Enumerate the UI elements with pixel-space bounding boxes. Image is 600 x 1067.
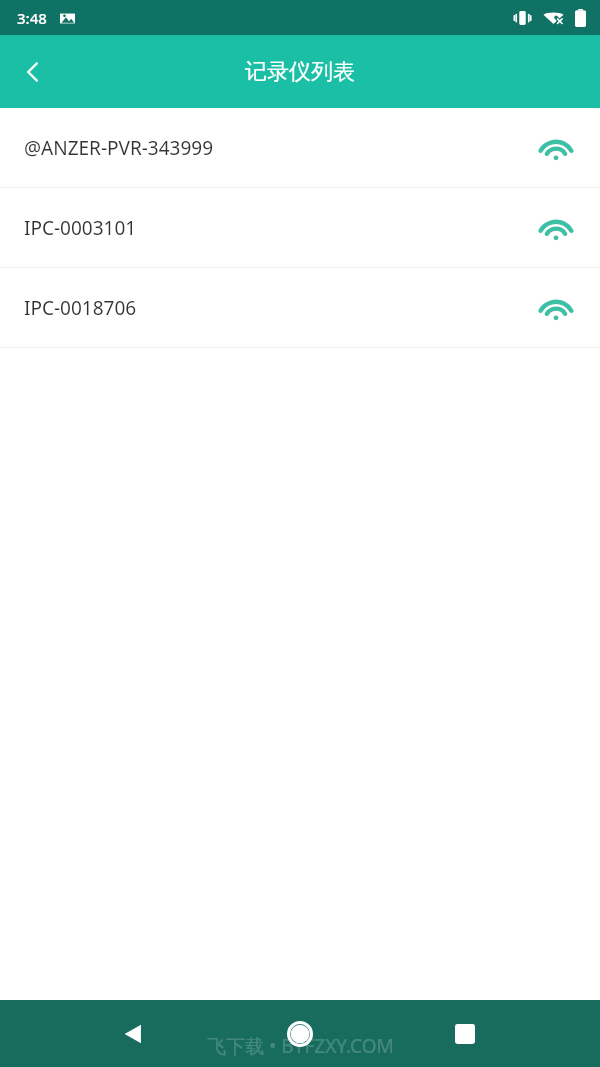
staticText: IPC-0003101 [24, 215, 137, 241]
staticText: 记录仪列表 [245, 58, 355, 86]
button[interactable]: IPC-0003101 [0, 188, 600, 267]
button[interactable]: Back [5, 44, 61, 100]
staticText: 飞下载 • BYFZXY.COM [207, 1033, 394, 1059]
staticText: IPC-0018706 [24, 295, 137, 321]
staticText: @ANZER-PVR-343999 [24, 135, 214, 161]
button[interactable]: Home [272, 1006, 328, 1062]
button[interactable]: @ANZER-PVR-343999 [0, 108, 600, 187]
button[interactable]: Recent apps [437, 1006, 493, 1062]
button[interactable]: IPC-0018706 [0, 268, 600, 347]
button[interactable]: Back [105, 1006, 161, 1062]
staticText: 3:48 [17, 8, 47, 28]
